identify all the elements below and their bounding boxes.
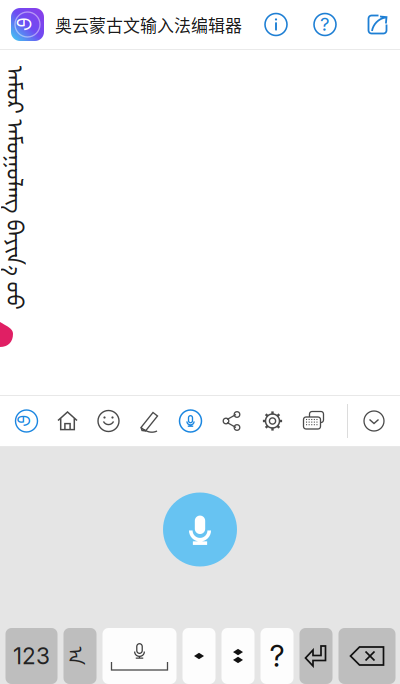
- button[interactable]: Home: [47, 399, 88, 443]
- button[interactable]: Start voice input: [163, 492, 237, 566]
- button[interactable]: ?: [260, 628, 293, 684]
- staticText: ᠠᠮᠤᠷ ᠠᠮᠤᠭᠤᠯᠠᠩ ᠪᠠᠶᠢᠨ᠎ᠠ ᠤᠤ: [0, 168, 142, 207]
- button[interactable]: Emoji: [88, 399, 129, 443]
- button[interactable]: [299, 628, 332, 684]
- button[interactable]: [102, 628, 176, 684]
- button[interactable]: 123: [5, 628, 57, 684]
- button[interactable]: Keyboard layout: [293, 399, 334, 443]
- staticText: ?: [320, 13, 330, 35]
- staticText: ᠪ: [20, 406, 32, 436]
- button[interactable]: Settings: [252, 399, 293, 443]
- button[interactable]: Help: [303, 0, 347, 49]
- staticText: ?: [269, 638, 284, 674]
- staticText: 123: [13, 642, 50, 670]
- button[interactable]: Voice input: [170, 399, 211, 443]
- button[interactable]: [338, 628, 395, 684]
- button[interactable]: Handwriting: [129, 399, 170, 443]
- button[interactable]: [221, 628, 254, 684]
- button[interactable]: ᠠ: [63, 628, 96, 684]
- button[interactable]: Share: [355, 0, 399, 49]
- staticText: ᠠ: [70, 638, 89, 673]
- button[interactable]: Share: [211, 399, 252, 443]
- button[interactable]: Info: [254, 0, 298, 49]
- staticText: ᠪ: [20, 7, 34, 42]
- button[interactable]: [182, 628, 215, 684]
- button[interactable]: Mongolian input: [6, 399, 47, 443]
- staticText: 奥云蒙古文输入法编辑器: [55, 12, 242, 37]
- button[interactable]: Collapse keyboard: [348, 399, 400, 443]
